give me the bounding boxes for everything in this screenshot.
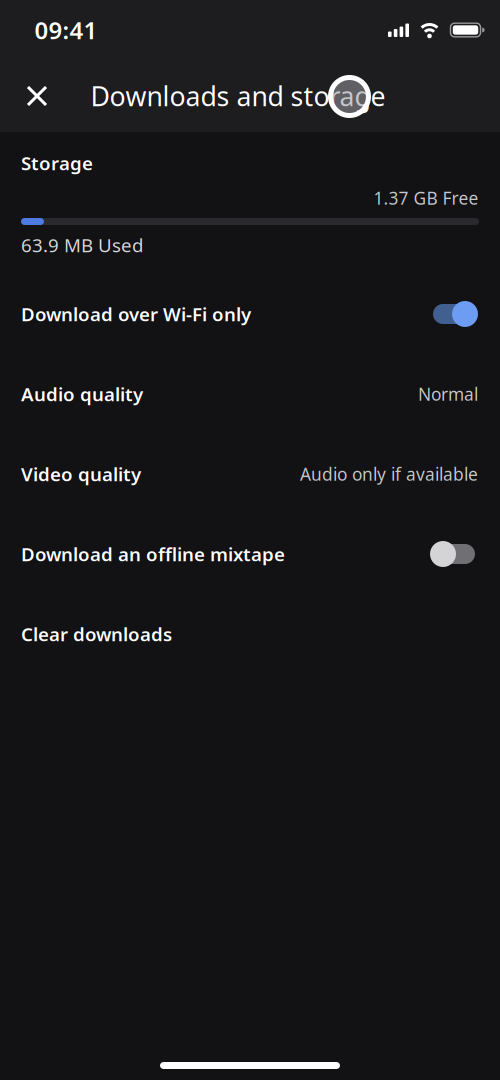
staticText: 1.37 GB Free — [373, 186, 478, 209]
staticText: Download over Wi-Fi only — [21, 302, 251, 326]
button[interactable]: Download an offline mixtape — [0, 514, 500, 594]
button[interactable]: Close — [15, 74, 59, 118]
staticText: Audio quality — [21, 382, 143, 406]
staticText: Downloads and storage — [90, 78, 385, 114]
button[interactable]: Video quality — [0, 434, 500, 514]
button[interactable]: Audio quality — [0, 354, 500, 434]
staticText: Clear downloads — [21, 622, 172, 646]
button[interactable]: Download over Wi-Fi only — [0, 274, 500, 354]
staticText: 63.9 MB Used — [21, 233, 143, 257]
button[interactable]: Clear downloads — [0, 594, 500, 674]
staticText: Normal — [418, 382, 478, 405]
staticText: Download an offline mixtape — [21, 542, 285, 566]
staticText: 09:41 — [34, 14, 97, 46]
staticText: Video quality — [21, 462, 141, 486]
staticText: Audio only if available — [300, 462, 478, 485]
staticText: Storage — [21, 151, 93, 175]
